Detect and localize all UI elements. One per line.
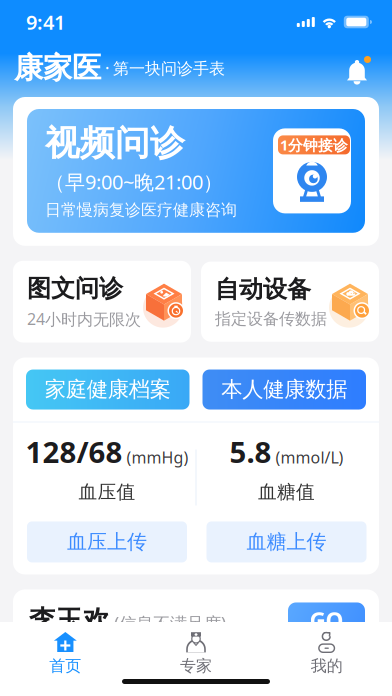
staticText: 血压值: [78, 480, 135, 503]
staticText: GO: [309, 605, 343, 635]
button[interactable]: 专家: [131, 631, 261, 675]
staticText: 我的: [311, 656, 343, 676]
button[interactable]: 通知: [344, 51, 376, 85]
button[interactable]: 图文问诊: [13, 261, 191, 342]
staticText: 血压上传: [67, 530, 147, 554]
staticText: (mmol/L): [275, 447, 343, 468]
staticText: （早9:00~晚21:00）: [45, 169, 223, 195]
staticText: 自动设备: [215, 275, 311, 304]
staticText: 9:41: [26, 9, 65, 35]
staticText: 李玉欢: [29, 604, 110, 637]
button[interactable]: 血糖上传: [206, 521, 366, 562]
staticText: 首页: [49, 656, 81, 676]
staticText: 血糖值: [258, 480, 315, 503]
staticText: (mmHg): [126, 447, 188, 468]
staticText: 指定设备传数据: [215, 309, 327, 329]
button[interactable]: 本人健康数据: [202, 369, 366, 409]
button[interactable]: 我的: [261, 631, 392, 675]
button[interactable]: 血压上传: [27, 521, 187, 562]
staticText: 康家医: [14, 50, 101, 86]
button[interactable]: 视频问诊: [27, 109, 365, 233]
staticText: 家庭健康档案: [45, 376, 171, 403]
staticText: 图文问诊: [27, 274, 123, 303]
staticText: 专家: [180, 656, 212, 676]
button[interactable]: 李玉欢: [13, 589, 379, 638]
staticText: 血糖上传: [246, 530, 326, 554]
staticText: 1分钟接诊: [280, 135, 348, 155]
staticText: 日常慢病复诊医疗健康咨询: [45, 200, 237, 220]
button[interactable]: 自动设备: [201, 262, 379, 342]
button[interactable]: 家庭健康档案: [26, 369, 189, 409]
staticText: (信息不满足度): [114, 612, 226, 635]
staticText: · 第一块问诊手表: [101, 57, 225, 79]
staticText: 本人健康数据: [221, 376, 347, 403]
staticText: 24小时内无限次: [27, 308, 141, 329]
staticText: 视频问诊: [45, 122, 185, 165]
staticText: 128/68: [25, 432, 122, 471]
button[interactable]: 首页: [0, 631, 131, 675]
staticText: 5.8: [229, 432, 271, 471]
